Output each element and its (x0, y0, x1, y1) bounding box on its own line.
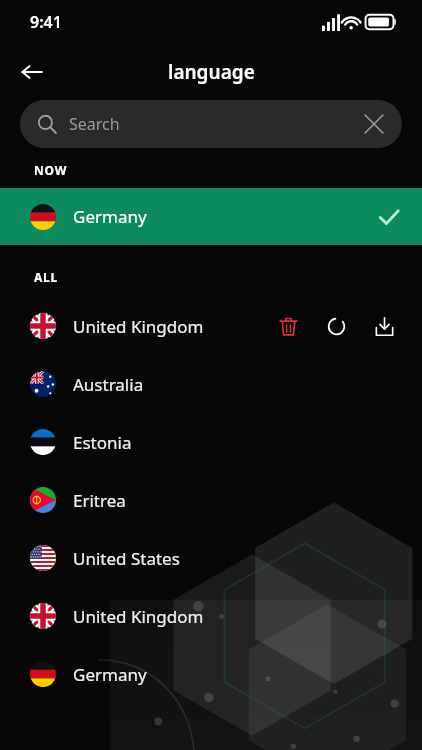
staticText: Eritrea (73, 489, 404, 512)
staticText: Germany (73, 205, 378, 228)
button[interactable]: Back (10, 50, 54, 94)
staticText: United Kingdom (73, 605, 404, 628)
button[interactable]: Estonia (0, 413, 422, 471)
button[interactable]: Germany (0, 645, 422, 703)
staticText: United Kingdom (73, 315, 268, 338)
button[interactable]: Refresh (316, 306, 356, 346)
button[interactable]: United Kingdom (0, 297, 422, 355)
button[interactable]: Germany (0, 188, 422, 245)
button[interactable]: United Kingdom (0, 587, 422, 645)
button[interactable]: Delete (268, 306, 308, 346)
staticText: Search (69, 113, 120, 135)
button[interactable]: Search (20, 100, 402, 148)
staticText: Australia (73, 373, 404, 396)
staticText: Estonia (73, 431, 404, 454)
staticText: ALL (34, 269, 59, 285)
button[interactable]: Eritrea (0, 471, 422, 529)
staticText: Germany (73, 663, 404, 686)
button[interactable]: Australia (0, 355, 422, 413)
staticText: United States (73, 547, 404, 570)
staticText: 9:41 (30, 11, 62, 33)
button[interactable]: Clear search (354, 104, 394, 144)
button[interactable]: Download (364, 306, 404, 346)
button[interactable]: United States (0, 529, 422, 587)
staticText: language (168, 59, 255, 85)
staticText: NOW (34, 162, 68, 178)
